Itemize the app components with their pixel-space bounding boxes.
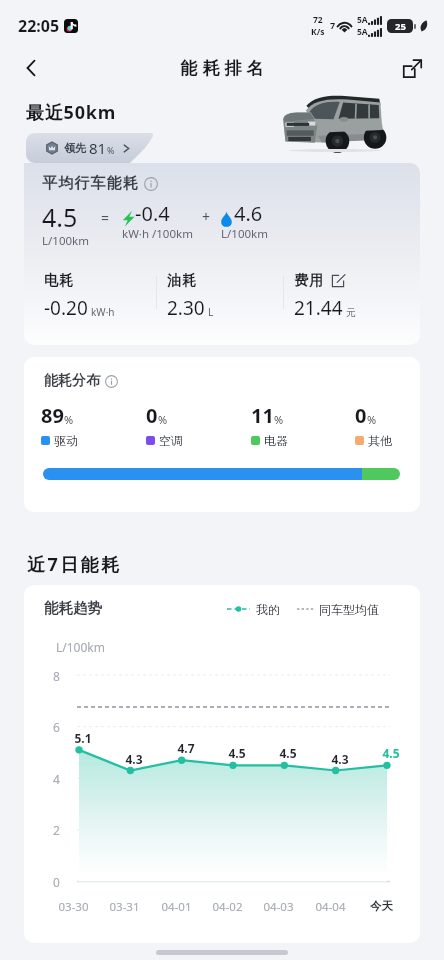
staticText: 8	[53, 668, 60, 684]
button[interactable]: Share	[394, 50, 430, 86]
staticText: 5A	[357, 14, 368, 26]
staticText: 能耗趋势	[44, 599, 102, 617]
staticText: 4.3	[331, 751, 349, 767]
staticText: 21.44	[294, 295, 343, 321]
staticText: 领先	[64, 141, 86, 155]
staticText: 11	[251, 402, 274, 429]
staticText: %	[158, 412, 168, 427]
staticText: 2	[53, 822, 60, 838]
staticText: 4.5	[279, 745, 297, 761]
staticText: 04-04	[315, 899, 346, 915]
staticText: L	[208, 305, 214, 319]
staticText: 7	[330, 19, 336, 31]
button[interactable]: Back	[12, 49, 50, 87]
staticText: 我的	[256, 602, 280, 617]
staticText: 5A	[357, 26, 368, 38]
staticText: 能耗排名	[178, 58, 266, 79]
staticText: 25	[395, 20, 406, 33]
button[interactable]: 领先	[26, 133, 156, 163]
staticText: 0	[146, 402, 158, 429]
staticText: 最近50km	[26, 100, 117, 125]
staticText: L/100km	[56, 639, 105, 655]
staticText: 5.1	[74, 730, 92, 746]
staticText: 4	[53, 771, 60, 787]
staticText: 元	[346, 306, 356, 319]
staticText: 4.7	[177, 740, 195, 756]
staticText: kW·h /100km	[122, 226, 193, 242]
staticText: 81	[89, 138, 107, 158]
staticText: 今天	[370, 899, 393, 913]
staticText: +	[202, 207, 211, 226]
staticText: %	[367, 412, 377, 427]
staticText: 72	[313, 14, 323, 26]
staticText: %	[107, 144, 115, 156]
staticText: 0	[355, 402, 367, 429]
staticText: 4.5	[382, 745, 400, 761]
staticText: 89	[41, 402, 64, 429]
staticText: 同车型均值	[319, 602, 379, 617]
staticText: =	[101, 208, 110, 227]
staticText: 03-30	[58, 899, 89, 915]
staticText: 4.5	[42, 200, 78, 234]
staticText: 4.5	[228, 745, 246, 761]
staticText: 03-31	[109, 899, 140, 915]
staticText: 电器	[264, 433, 288, 448]
staticText: 电耗	[44, 272, 75, 290]
staticText: L/100km	[42, 233, 89, 249]
staticText: 04-02	[212, 899, 243, 915]
staticText: 油耗	[167, 272, 198, 290]
staticText: 4.6	[234, 200, 263, 227]
staticText: %	[64, 412, 74, 427]
staticText: 驱动	[54, 433, 78, 448]
staticText: 空调	[159, 433, 183, 448]
staticText: 0	[53, 874, 60, 890]
staticText: 近7日能耗	[27, 552, 122, 577]
staticText: L/100km	[221, 226, 268, 242]
staticText: K/s	[311, 26, 325, 38]
button[interactable]: Edit cost	[331, 274, 345, 288]
staticText: 平均行车能耗	[42, 174, 140, 193]
staticText: 4.3	[125, 751, 143, 767]
staticText: 费用	[294, 272, 325, 290]
staticText: 能耗分布	[44, 372, 100, 390]
staticText: 6	[53, 719, 60, 735]
staticText: 2.30	[167, 295, 205, 321]
staticText: 04-01	[161, 899, 192, 915]
staticText: 其他	[368, 433, 392, 448]
staticText: %	[274, 412, 284, 427]
staticText: 04-03	[263, 899, 294, 915]
staticText: -0.20	[44, 295, 88, 321]
staticText: 22:05	[18, 15, 60, 37]
staticText: -0.4	[135, 200, 170, 227]
staticText: kW·h	[91, 305, 115, 319]
